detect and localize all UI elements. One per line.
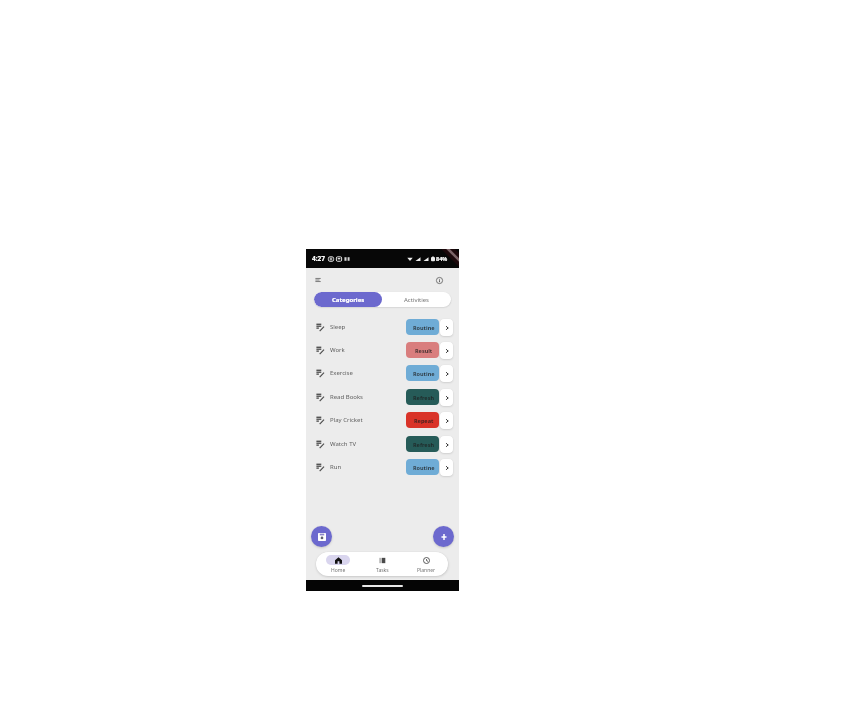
- button[interactable]: Categories: [314, 292, 382, 307]
- staticText: Work: [330, 346, 345, 354]
- button[interactable]: Open Work: [440, 342, 453, 359]
- staticText: Refresh: [413, 441, 434, 448]
- button[interactable]: Home: [316, 552, 360, 576]
- button[interactable]: Run: [306, 455, 459, 479]
- staticText: Watch TV: [330, 440, 357, 448]
- staticText: Play Cricket: [330, 416, 363, 424]
- staticText: Exercise: [330, 369, 353, 377]
- staticText: Routine: [413, 464, 435, 471]
- button[interactable]: Menu: [315, 277, 321, 283]
- staticText: Refresh: [413, 394, 434, 401]
- button[interactable]: Exercise: [306, 361, 459, 385]
- staticText: Run: [330, 463, 342, 471]
- button[interactable]: Activities: [382, 292, 451, 307]
- button[interactable]: Open Watch TV: [440, 436, 453, 453]
- button[interactable]: Open Play Cricket: [440, 412, 453, 429]
- button[interactable]: Open Read Books: [440, 389, 453, 406]
- staticText: Routine: [413, 370, 435, 377]
- staticText: Sleep: [330, 323, 346, 331]
- staticText: Repeat: [414, 417, 434, 424]
- button[interactable]: Open Run: [440, 459, 453, 476]
- staticText: 4:27: [312, 254, 325, 263]
- staticText: Routine: [413, 324, 435, 331]
- staticText: Result: [415, 347, 433, 354]
- button[interactable]: Read Books: [306, 385, 459, 409]
- button[interactable]: Sleep: [306, 315, 459, 339]
- staticText: Read Books: [330, 393, 363, 401]
- button[interactable]: Play Cricket: [306, 408, 459, 432]
- staticText: 84%: [436, 255, 448, 262]
- button[interactable]: Watch TV: [306, 432, 459, 456]
- button[interactable]: Open Exercise: [440, 365, 453, 382]
- button[interactable]: Info: [436, 277, 443, 284]
- button[interactable]: Planner: [404, 552, 448, 576]
- button[interactable]: Save: [311, 526, 332, 547]
- staticText: Tasks: [376, 567, 389, 574]
- button[interactable]: Tasks: [360, 552, 404, 576]
- staticText: Categories: [332, 296, 365, 304]
- staticText: Home: [331, 567, 346, 574]
- button[interactable]: Work: [306, 338, 459, 362]
- button[interactable]: Add: [433, 526, 454, 547]
- staticText: Activities: [404, 296, 429, 304]
- staticText: Planner: [417, 567, 436, 574]
- button[interactable]: Open Sleep: [440, 319, 453, 336]
